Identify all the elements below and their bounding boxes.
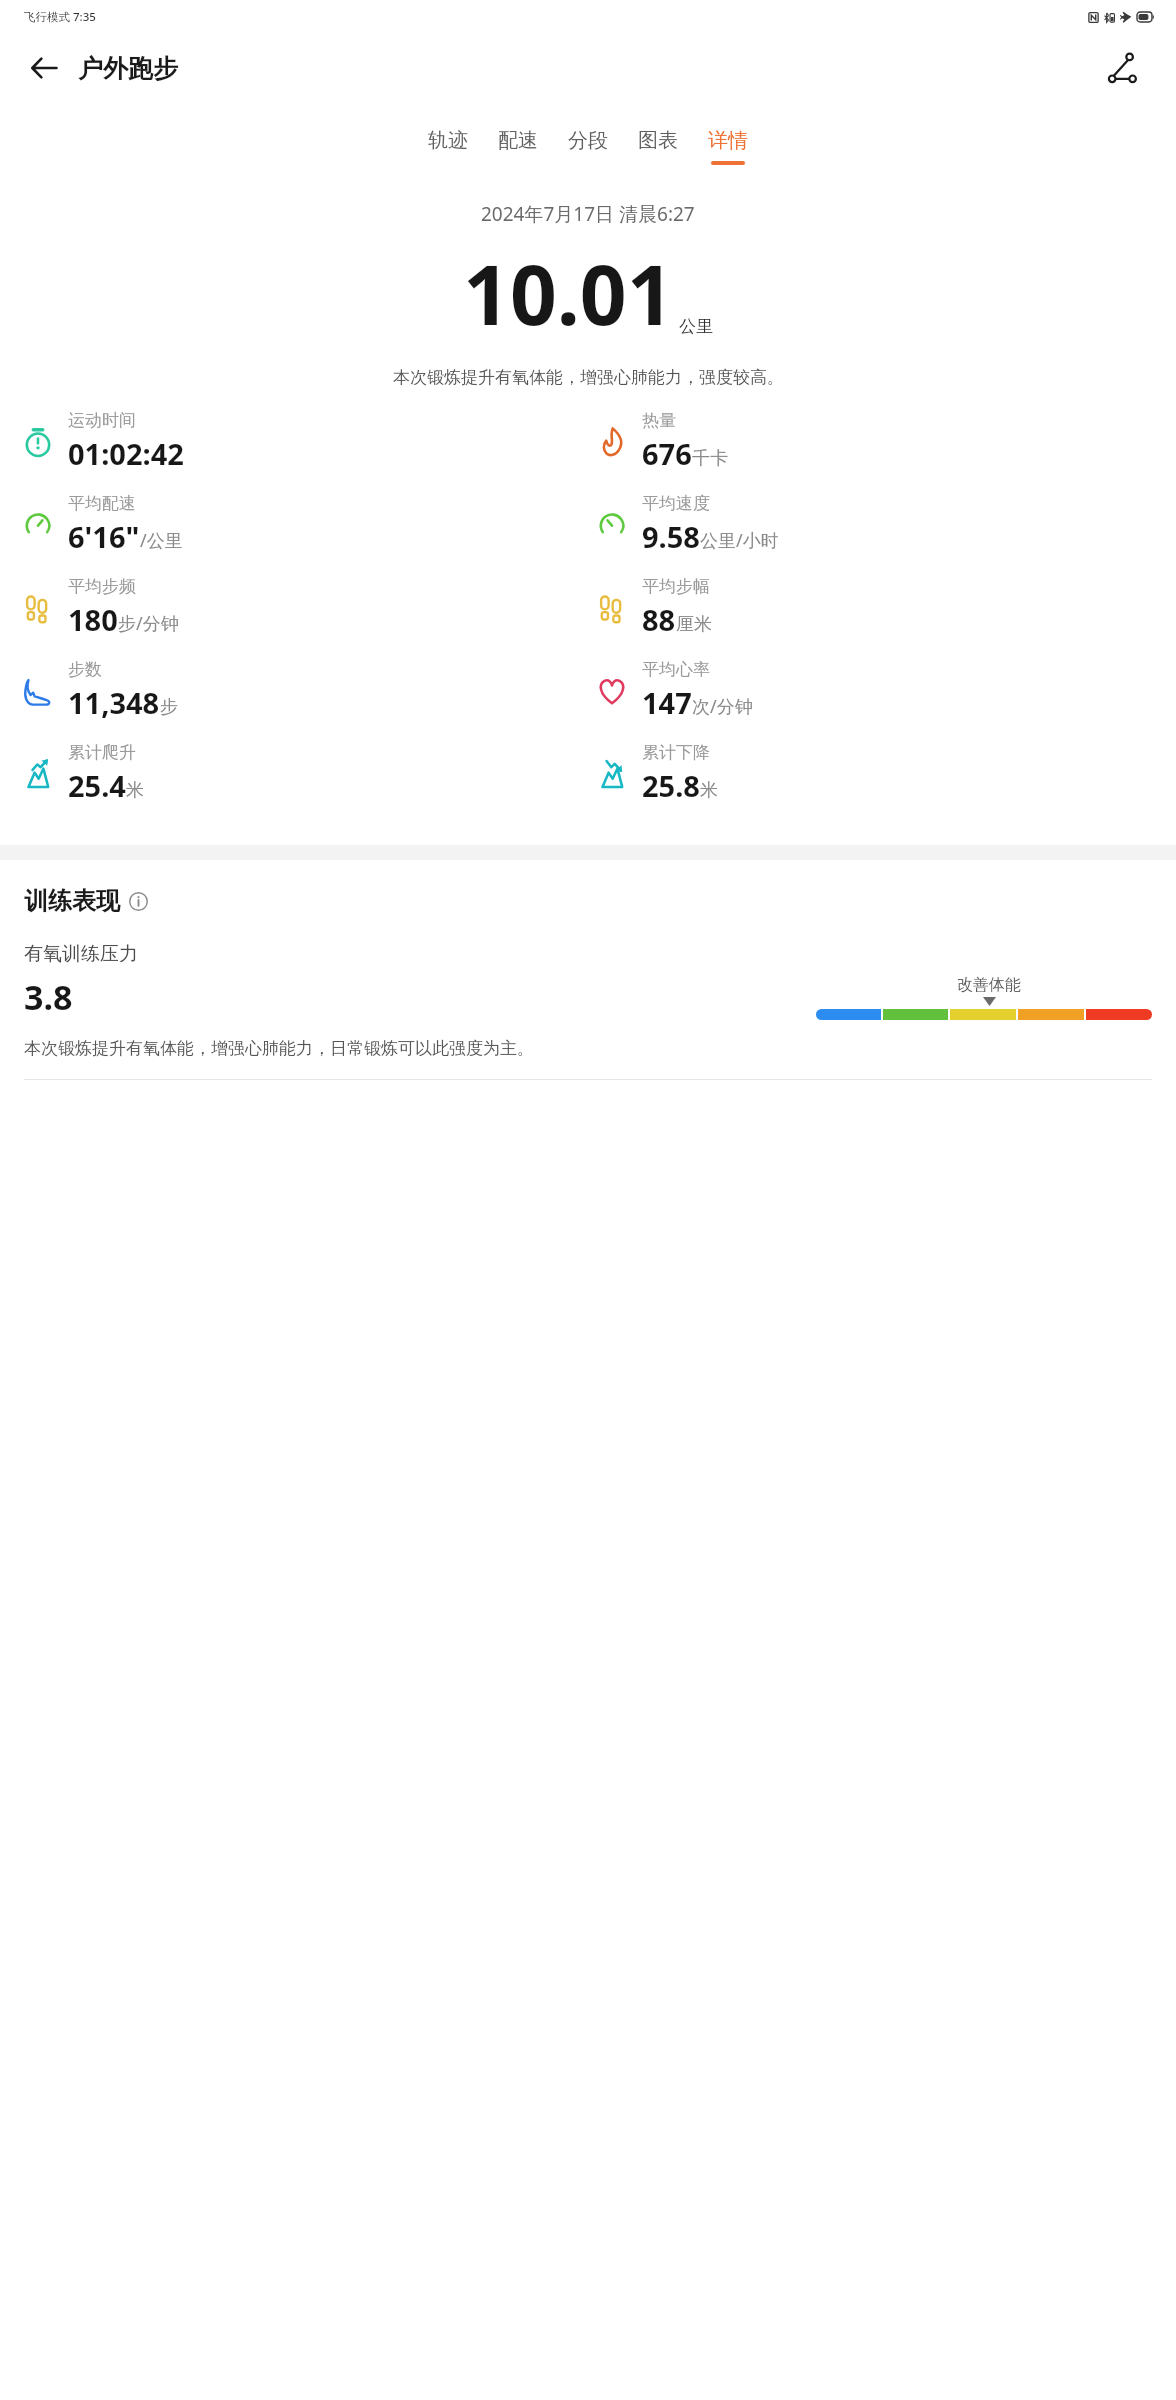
staticText: 步数 (68, 659, 102, 680)
button[interactable]: 平均心率 (588, 657, 1162, 724)
staticText: 步 (160, 696, 178, 719)
button[interactable]: 平均步幅 (588, 574, 1162, 641)
staticText: 图表 (638, 128, 678, 153)
staticText: 累计爬升 (68, 742, 136, 763)
staticText: 平均心率 (642, 659, 710, 680)
staticText: 训练表现 (24, 886, 120, 916)
staticText: 6'16" (68, 517, 140, 556)
staticText: 轨迹 (428, 128, 468, 153)
staticText: 平均速度 (642, 493, 710, 514)
button[interactable]: 平均配速 (14, 491, 588, 558)
staticText: 平均步频 (68, 576, 136, 597)
staticText: 本次锻炼提升有氧体能，增强心肺能力，强度较高。 (393, 367, 784, 388)
button[interactable]: 详情 (693, 124, 763, 169)
other: Info (129, 892, 148, 911)
staticText: 11,348 (68, 683, 160, 722)
staticText: 详情 (708, 128, 748, 153)
staticText: 676 (642, 434, 692, 473)
button[interactable]: 累计下降 (588, 740, 1162, 807)
button[interactable]: 累计爬升 (14, 740, 588, 807)
staticText: 有氧训练压力 (24, 942, 138, 966)
staticText: 3.8 (24, 974, 73, 1020)
button[interactable]: 运动时间 (14, 408, 588, 475)
staticText: /公里 (140, 528, 183, 553)
staticText: 公里 (679, 316, 713, 337)
staticText: 累计下降 (642, 742, 710, 763)
staticText: 2024年7月17日 清晨6:27 (481, 201, 695, 227)
button[interactable]: 步数 (14, 657, 588, 724)
button[interactable]: 图表 (623, 124, 693, 169)
staticText: 88 (642, 600, 676, 639)
button[interactable]: 热量 (588, 408, 1162, 475)
staticText: 10.01 (463, 237, 674, 349)
button[interactable]: 分段 (553, 124, 623, 169)
staticText: 180 (68, 600, 118, 639)
staticText: 千卡 (692, 447, 728, 470)
staticText: 147 (642, 683, 692, 722)
button[interactable]: 平均速度 (588, 491, 1162, 558)
staticText: 米 (126, 779, 144, 802)
staticText: 9.58 (642, 517, 700, 556)
staticText: 改善体能 (957, 975, 1021, 995)
button[interactable]: 训练表现 (24, 886, 148, 916)
button[interactable]: 配速 (483, 124, 553, 169)
staticText: 平均步幅 (642, 576, 710, 597)
button[interactable]: Share (1096, 41, 1150, 95)
staticText: 本次锻炼提升有氧体能，增强心肺能力，日常锻炼可以此强度为主。 (24, 1038, 534, 1059)
button[interactable]: Back (18, 42, 70, 94)
staticText: 米 (700, 779, 718, 802)
button[interactable]: 平均步频 (14, 574, 588, 641)
staticText: 厘米 (676, 613, 712, 636)
staticText: 户外跑步 (78, 53, 178, 84)
staticText: 01:02:42 (68, 434, 184, 473)
staticText: 25.8 (642, 766, 700, 805)
staticText: 平均配速 (68, 493, 136, 514)
staticText: 飞行模式 7:35 (24, 9, 96, 25)
button[interactable]: 轨迹 (413, 124, 483, 169)
staticText: 25.4 (68, 766, 126, 805)
staticText: 步/分钟 (118, 611, 179, 636)
staticText: 公里/小时 (700, 528, 779, 553)
staticText: 运动时间 (68, 410, 136, 431)
staticText: 次/分钟 (692, 694, 753, 719)
staticText: 分段 (568, 128, 608, 153)
staticText: 热量 (642, 410, 676, 431)
staticText: 配速 (498, 128, 538, 153)
